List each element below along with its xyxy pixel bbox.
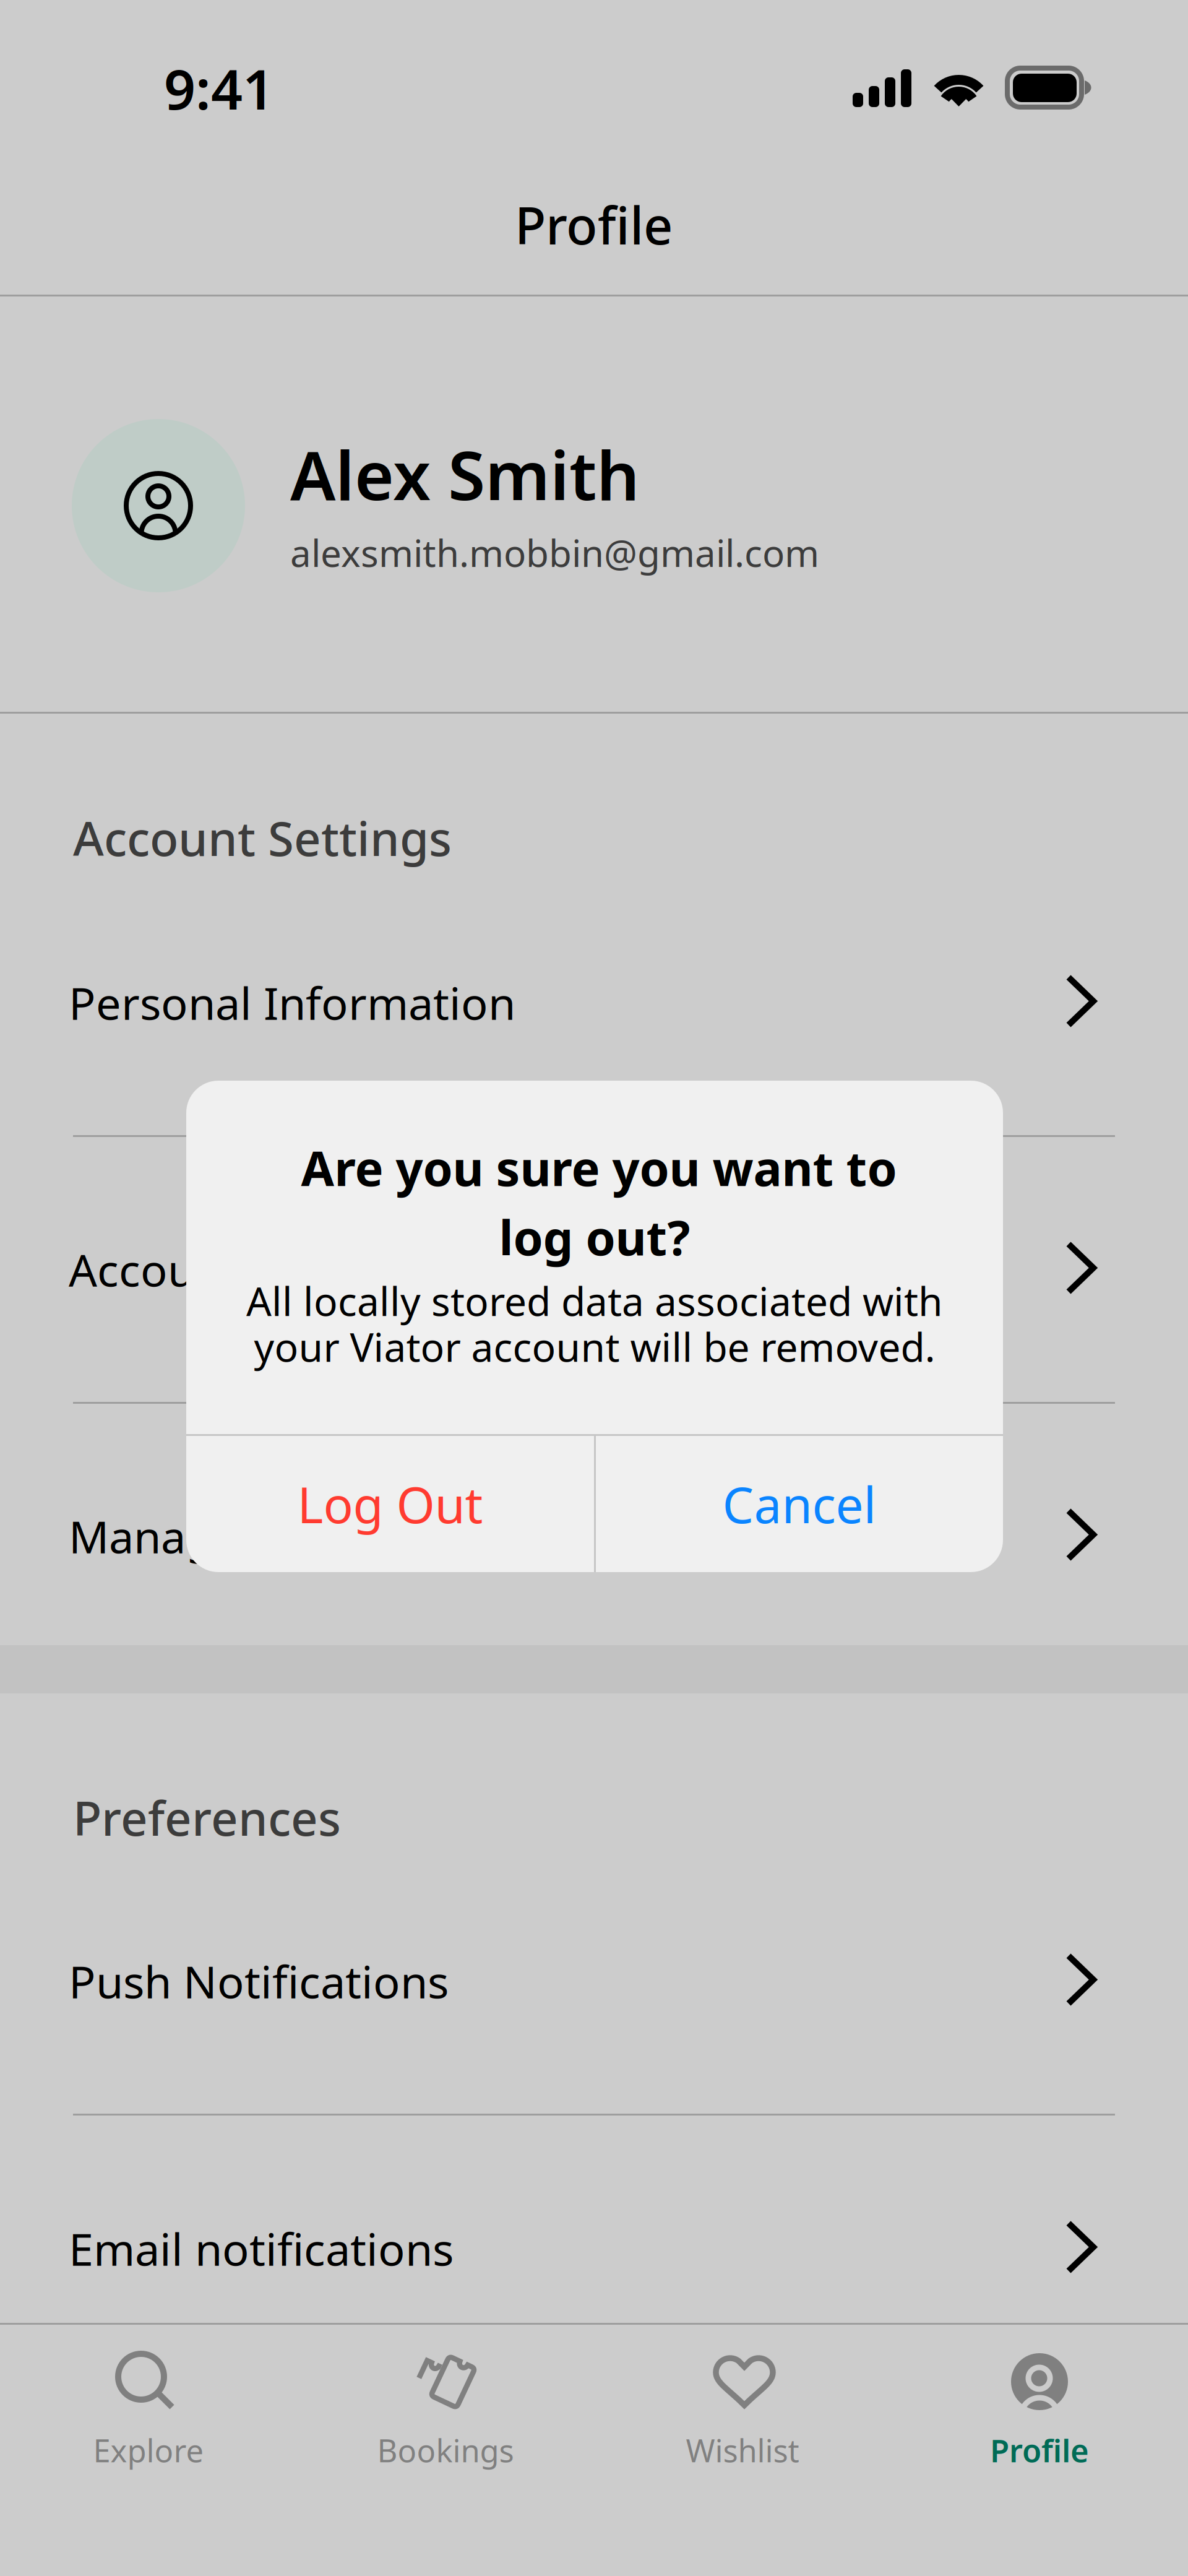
button[interactable]: Bookings [297, 2323, 594, 2509]
staticText: Bookings [377, 2429, 514, 2471]
staticText: Account Settings [73, 806, 452, 869]
staticText: your Viator account will be removed. [254, 1320, 935, 1373]
button[interactable]: Push Notifications [0, 1914, 1188, 2046]
staticText: alexsmith.mobbin@gmail.com [290, 528, 819, 577]
button[interactable]: Wishlist [594, 2323, 891, 2509]
button[interactable]: Profile [891, 2323, 1188, 2509]
button[interactable]: Manage Account [0, 1469, 1188, 1601]
staticText: Profile [515, 191, 673, 259]
staticText: All locally stored data associated with [246, 1274, 943, 1327]
staticText: Cancel [722, 1471, 876, 1537]
button[interactable]: Email notifications [0, 2181, 1188, 2314]
button[interactable]: Personal Information [0, 935, 1188, 1068]
staticText: Preferences [73, 1786, 341, 1849]
staticText: Account Security [69, 1240, 418, 1299]
staticText: Alex Smith [290, 429, 640, 519]
staticText: 9:41 [164, 51, 274, 125]
button[interactable]: Cancel [596, 1436, 1003, 1572]
staticText: Are you sure you want to [301, 1136, 897, 1199]
staticText: Email notifications [69, 2219, 454, 2278]
staticText: Personal Information [69, 973, 515, 1032]
staticText: Wishlist [686, 2429, 799, 2471]
button[interactable]: Explore [0, 2323, 297, 2509]
staticText: Log Out [297, 1471, 483, 1537]
staticText: Explore [93, 2429, 204, 2471]
button[interactable]: Account Security [0, 1202, 1188, 1334]
button[interactable]: Log Out [186, 1436, 594, 1572]
staticText: Profile [990, 2429, 1089, 2471]
staticText: log out? [499, 1205, 690, 1269]
staticText: Manage Account [69, 1506, 420, 1566]
staticText: Push Notifications [69, 1951, 449, 2011]
